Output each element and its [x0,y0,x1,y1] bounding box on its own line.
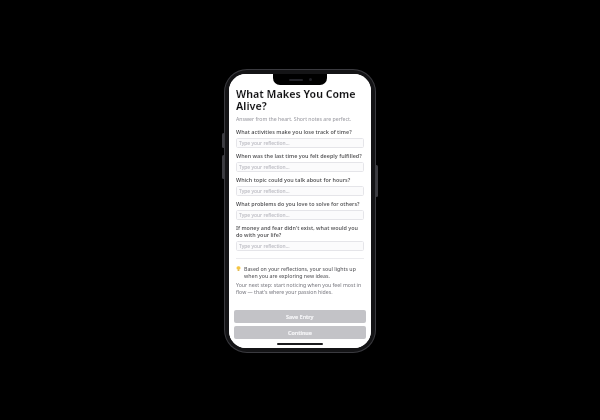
button[interactable]: Reflection input [236,138,364,148]
button[interactable]: Save Entry [234,310,366,323]
button[interactable]: Reflection input [236,210,364,220]
staticText: Which topic could you talk about for hou… [236,176,351,183]
button[interactable]: Reflection input [236,186,364,196]
staticText: Type your reflection... [239,212,290,219]
staticText: What problems do you love to solve for o… [236,200,360,207]
button[interactable]: Continue [234,326,366,339]
staticText: Type your reflection... [239,188,290,195]
staticText: Answer from the heart. Short notes are p… [236,115,352,122]
staticText: Continue [288,329,312,336]
button[interactable]: Reflection input [236,162,364,172]
staticText: What Makes You Come Alive? [236,87,364,113]
staticText: What activities make you lose track of t… [236,128,352,135]
staticText: Save Entry [286,313,314,320]
staticText: Type your reflection... [239,243,290,250]
staticText: Type your reflection... [239,140,290,147]
staticText: Your next step: start noticing when you … [236,281,364,295]
staticText: If money and fear didn't exist, what wou… [236,224,364,238]
staticText: Based on your reflections, your soul lig… [244,265,364,279]
button[interactable]: Reflection input [236,241,364,251]
staticText: When was the last time you felt deeply f… [236,152,362,159]
staticText: Type your reflection... [239,164,290,171]
